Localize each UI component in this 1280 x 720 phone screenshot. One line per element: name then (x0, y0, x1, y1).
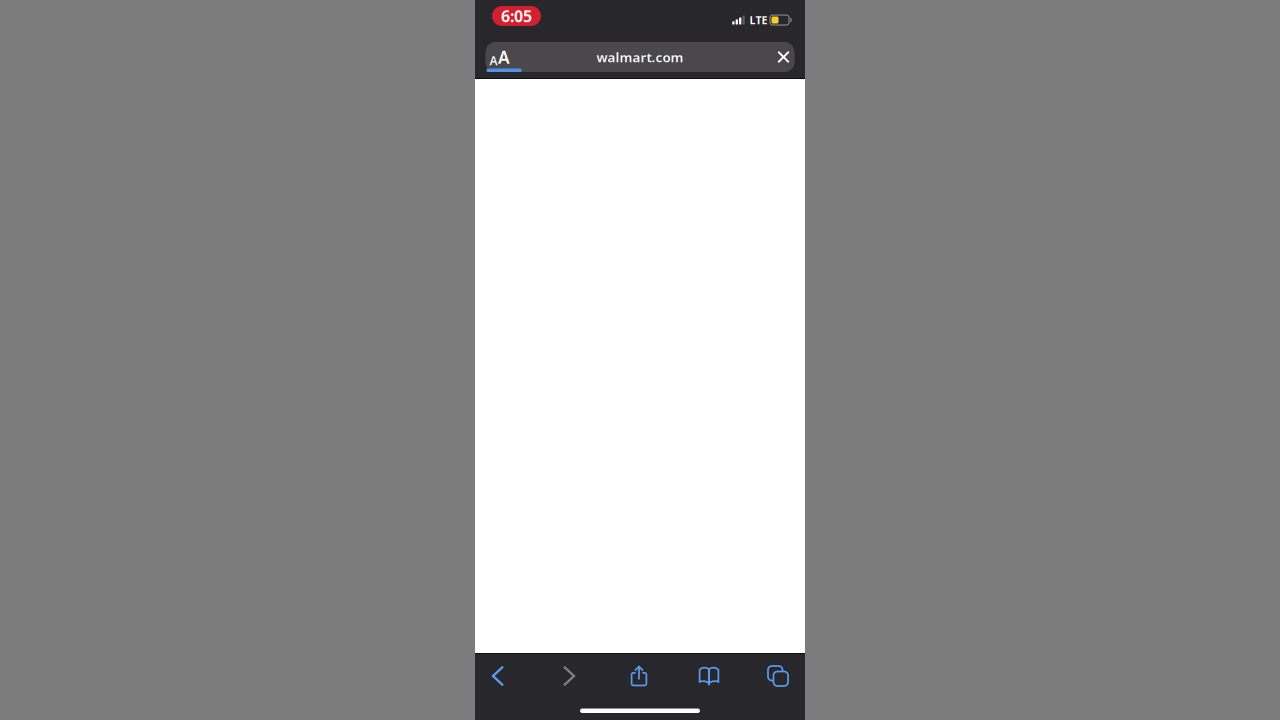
button[interactable]: Forward (547, 654, 591, 698)
button[interactable]: Page settings (485, 42, 517, 72)
button[interactable]: Bookmarks (687, 654, 731, 698)
staticText: walmart.com (596, 48, 683, 66)
button[interactable]: Back (476, 654, 520, 698)
staticText: 6:05 (501, 5, 532, 27)
staticText: A (498, 45, 510, 68)
staticText: LTE (749, 13, 767, 27)
button[interactable]: Share (617, 654, 661, 698)
button[interactable]: Tabs (756, 654, 800, 698)
staticText: A (489, 53, 497, 68)
button[interactable]: Stop loading (772, 42, 794, 72)
